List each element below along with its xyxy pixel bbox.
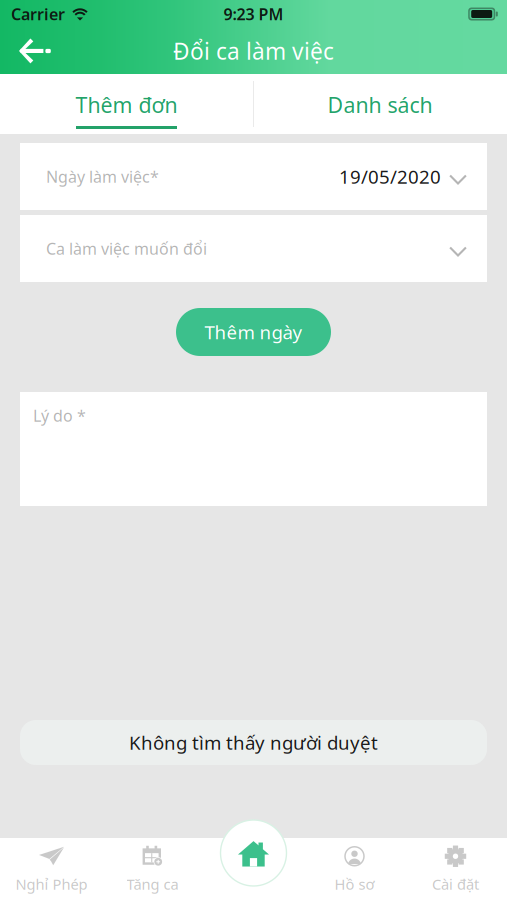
button[interactable]: Cài đặt (405, 838, 506, 900)
button[interactable]: Trang chủ (220, 820, 286, 886)
button[interactable]: Thêm ngày (176, 308, 331, 356)
staticText: Cài đặt (432, 874, 479, 894)
button[interactable]: Danh sách (253, 74, 507, 134)
staticText: Lý do * (33, 405, 86, 426)
button[interactable]: Tăng ca (102, 838, 203, 900)
staticText: Danh sách (327, 91, 432, 119)
staticText: Carrier (11, 3, 65, 25)
staticText: 9:23 PM (223, 3, 283, 25)
staticText: 19/05/2020 (339, 164, 441, 189)
button[interactable]: Hồ sơ (304, 838, 405, 900)
button[interactable]: Thêm đơn (0, 74, 253, 134)
staticText: Tăng ca (126, 874, 178, 894)
staticText: Hồ sơ (334, 874, 374, 894)
staticText: Thêm đơn (75, 91, 177, 119)
staticText: Ngày làm việc* (46, 166, 159, 187)
staticText: Không tìm thấy người duyệt (129, 730, 378, 755)
staticText: Đổi ca làm việc (173, 36, 334, 66)
staticText: Thêm ngày (204, 320, 302, 344)
staticText: Nghỉ Phép (15, 874, 87, 894)
button[interactable]: Nghỉ Phép (1, 838, 102, 900)
staticText: Ca làm việc muốn đổi (46, 238, 207, 259)
button[interactable]: Quay lại (0, 28, 70, 74)
